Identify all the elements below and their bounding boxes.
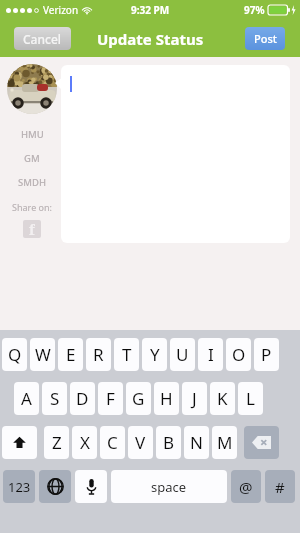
staticText: GM <box>24 152 40 165</box>
button[interactable]: I <box>198 338 223 371</box>
staticText: Post <box>254 31 277 46</box>
button[interactable] <box>61 65 290 243</box>
staticText: I <box>208 343 214 366</box>
button[interactable]: Cancel <box>14 27 71 50</box>
button[interactable]: space <box>111 470 227 503</box>
staticText: W <box>35 343 51 366</box>
button[interactable]: T <box>114 338 139 371</box>
button[interactable]: @ <box>231 470 261 503</box>
staticText: H <box>160 387 173 410</box>
button[interactable]: Profile photo <box>7 64 57 114</box>
button[interactable]: N <box>184 426 209 459</box>
button[interactable]: V <box>128 426 153 459</box>
staticText: K <box>217 387 228 410</box>
staticText: C <box>107 431 118 454</box>
staticText: P <box>261 343 272 366</box>
button[interactable]: # <box>265 470 295 503</box>
button[interactable]: Backspace <box>244 426 279 459</box>
button[interactable]: D <box>70 382 95 415</box>
staticText: J <box>192 387 197 410</box>
staticText: S <box>50 387 60 410</box>
button[interactable]: A <box>14 382 39 415</box>
button[interactable]: U <box>170 338 195 371</box>
button[interactable]: M <box>212 426 237 459</box>
staticText: 97% <box>244 3 265 17</box>
button[interactable]: K <box>210 382 235 415</box>
staticText: T <box>122 343 132 366</box>
staticText: 123 <box>8 478 31 496</box>
button[interactable]: R <box>86 338 111 371</box>
button[interactable]: Share on Facebook <box>23 220 41 238</box>
staticText: V <box>135 431 146 454</box>
button[interactable]: E <box>58 338 83 371</box>
button[interactable]: B <box>156 426 181 459</box>
staticText: 9:32 PM <box>131 3 170 17</box>
button[interactable]: F <box>98 382 123 415</box>
staticText: L <box>246 387 255 410</box>
button[interactable]: J <box>182 382 207 415</box>
staticText: Y <box>150 343 160 366</box>
staticText: D <box>76 387 89 410</box>
button[interactable]: P <box>254 338 279 371</box>
staticText: B <box>163 431 175 454</box>
staticText: @ <box>239 477 253 497</box>
button[interactable]: 123 <box>3 470 35 503</box>
staticText: M <box>217 431 233 454</box>
button[interactable]: S <box>42 382 67 415</box>
button[interactable]: Shift <box>2 426 37 459</box>
button[interactable]: C <box>100 426 125 459</box>
button[interactable]: Y <box>142 338 167 371</box>
button[interactable]: Z <box>44 426 69 459</box>
staticText: Update Status <box>97 29 204 49</box>
staticText: A <box>21 387 32 410</box>
button[interactable]: G <box>126 382 151 415</box>
staticText: Verizon <box>43 3 79 17</box>
button[interactable]: Dictate <box>75 470 107 503</box>
staticText: Share on: <box>12 201 52 213</box>
staticText: # <box>275 477 285 497</box>
button[interactable]: GM <box>0 152 64 165</box>
staticText: U <box>176 343 189 366</box>
staticText: X <box>80 431 90 454</box>
button[interactable]: H <box>154 382 179 415</box>
button[interactable]: HMU <box>0 128 64 141</box>
staticText: Cancel <box>23 31 62 47</box>
staticText: Q <box>8 343 22 366</box>
button[interactable]: W <box>30 338 55 371</box>
staticText: N <box>190 431 203 454</box>
button[interactable]: Q <box>2 338 27 371</box>
staticText: space <box>151 478 187 496</box>
staticText: G <box>132 387 145 410</box>
staticText: Z <box>52 431 62 454</box>
button[interactable]: Change keyboard <box>39 470 71 503</box>
staticText: E <box>66 343 76 366</box>
button[interactable]: X <box>72 426 97 459</box>
button[interactable]: Post <box>245 27 285 50</box>
staticText: f <box>29 220 35 238</box>
staticText: O <box>232 343 246 366</box>
staticText: HMU <box>21 128 44 141</box>
button[interactable]: L <box>238 382 263 415</box>
staticText: SMDH <box>18 176 46 189</box>
button[interactable]: O <box>226 338 251 371</box>
staticText: R <box>93 343 104 366</box>
staticText: F <box>106 387 115 410</box>
button[interactable]: SMDH <box>0 176 64 189</box>
